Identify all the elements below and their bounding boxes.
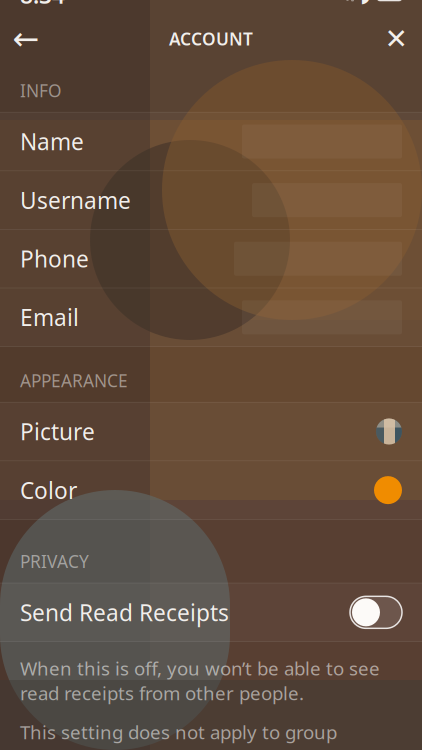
button[interactable]: Picture [0,402,422,460]
button[interactable]: Phone [0,230,422,288]
staticText: ← [12,21,39,57]
staticText: 8:34 [20,0,65,10]
staticText: ACCOUNT [169,27,253,50]
staticText: Color [20,475,77,505]
button[interactable]: Email [0,288,422,346]
staticText: This setting does not apply to group con… [20,719,337,750]
button[interactable]: Back [2,17,50,61]
staticText: Phone [20,244,89,274]
staticText: Email [20,302,79,332]
staticText: PRIVACY [20,550,89,573]
button[interactable]: Send Read Receipts [0,583,422,641]
staticText: APPEARANCE [20,369,128,392]
button[interactable]: Name [0,112,422,170]
staticText: When this is off, you won’t be able to s… [20,656,380,705]
staticText: Name [20,126,84,157]
button[interactable]: Close [372,17,420,61]
staticText: Username [20,185,131,215]
staticText: ✕ [384,23,407,55]
staticText: Send Read Receipts [20,597,229,627]
staticText: ◗ [360,0,371,6]
staticText: INFO [20,79,62,102]
button[interactable]: Username [0,171,422,229]
button[interactable]: Color [0,461,422,519]
staticText: Picture [20,416,95,447]
